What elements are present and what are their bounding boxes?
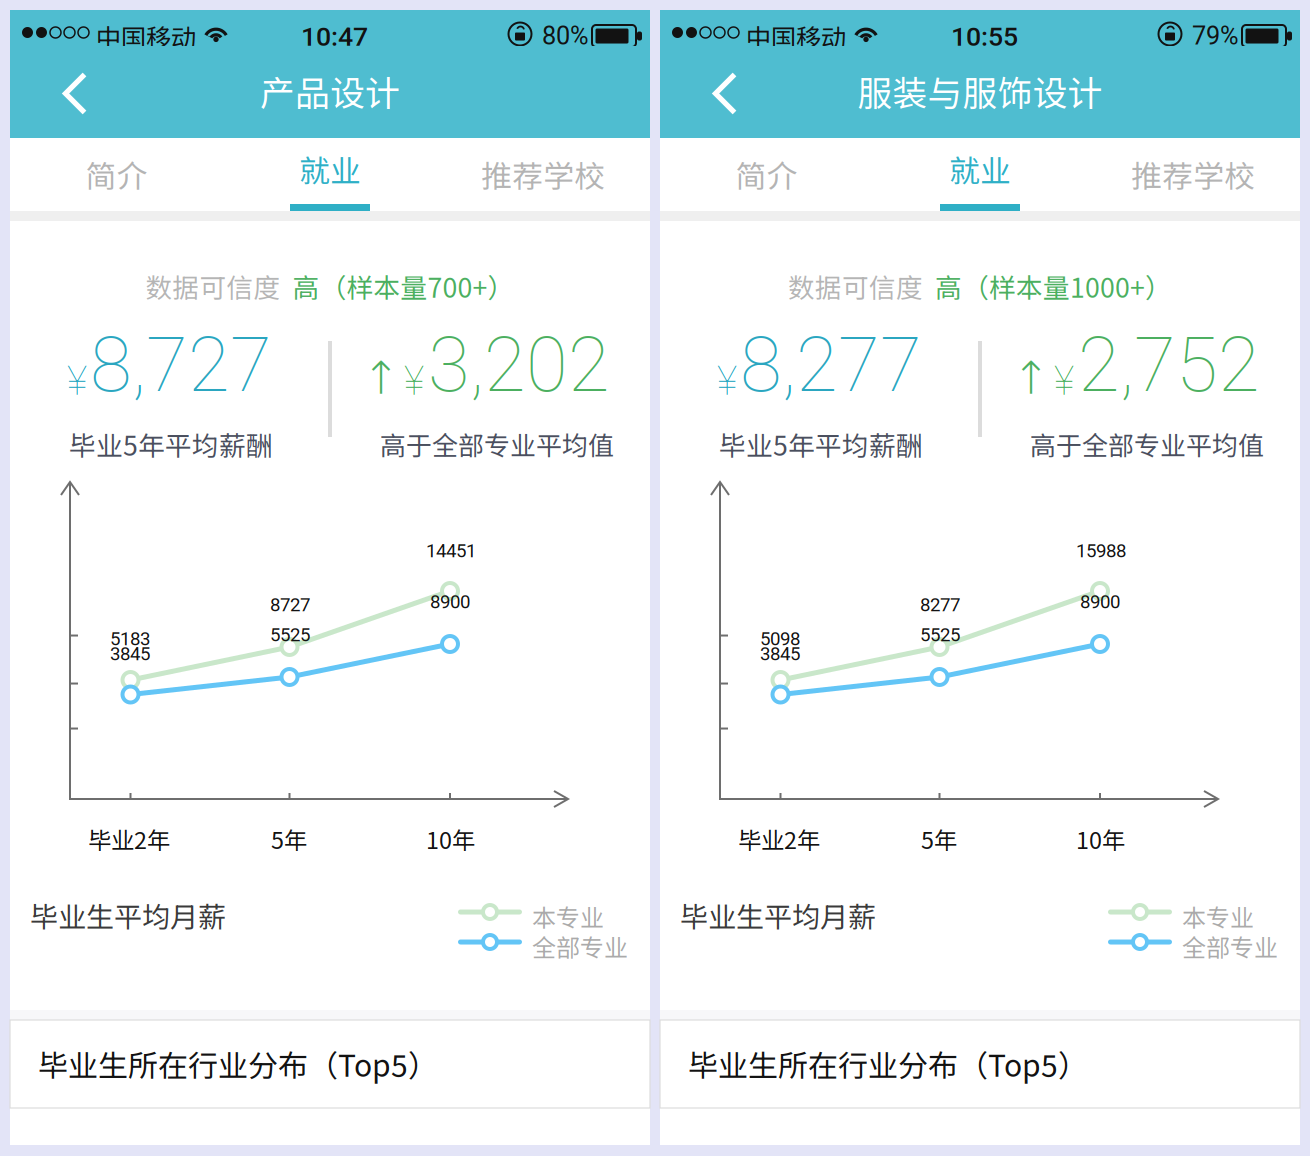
- button[interactable]: 简介: [10, 138, 223, 211]
- staticText: 10年: [1076, 822, 1125, 856]
- button[interactable]: 推荐学校: [437, 138, 650, 211]
- staticText: 3,202: [428, 320, 610, 410]
- staticText: 5年: [271, 822, 307, 856]
- staticText: ↑: [362, 352, 400, 405]
- staticText: 5183: [110, 628, 150, 650]
- staticText: 毕业生平均月薪: [680, 895, 876, 935]
- staticText: 10:47: [301, 21, 368, 52]
- staticText: 5525: [920, 624, 960, 646]
- staticText: 3845: [110, 643, 150, 665]
- staticText: 5098: [760, 628, 800, 650]
- staticText: 高于全部专业平均值: [1030, 425, 1264, 463]
- staticText: 数据可信度: [788, 267, 923, 305]
- staticText: 毕业生平均月薪: [30, 895, 226, 935]
- staticText: 5年: [921, 822, 957, 856]
- staticText: 毕业2年: [738, 822, 820, 856]
- staticText: 15988: [1076, 540, 1126, 562]
- staticText: 产品设计: [260, 66, 400, 116]
- staticText: 毕业2年: [88, 822, 170, 856]
- button[interactable]: 就业: [873, 138, 1087, 211]
- staticText: 毕业生所在行业分布（Top5）: [688, 1042, 1088, 1085]
- staticText: 79%: [1192, 21, 1239, 51]
- staticText: 8,727: [90, 320, 272, 410]
- staticText: 本专业: [1182, 899, 1254, 934]
- button[interactable]: 返回: [660, 46, 770, 138]
- button[interactable]: 就业: [223, 138, 437, 211]
- staticText: 全部专业: [532, 929, 628, 964]
- staticText: 简介: [86, 152, 148, 197]
- staticText: 14451: [426, 540, 476, 562]
- button[interactable]: 返回: [10, 46, 120, 138]
- staticText: 就业: [949, 147, 1011, 191]
- staticText: 8277: [920, 594, 960, 616]
- staticText: 高（样本量700+）: [280, 267, 514, 305]
- staticText: 10:55: [951, 21, 1018, 52]
- staticText: 就业: [299, 147, 361, 191]
- button[interactable]: 简介: [660, 138, 873, 211]
- staticText: 全部专业: [1182, 929, 1278, 964]
- staticText: 8,277: [740, 320, 922, 410]
- staticText: ¥: [67, 358, 87, 405]
- button[interactable]: 毕业生所在行业分布（Top5）: [660, 1020, 1300, 1108]
- staticText: 中国移动: [96, 18, 196, 55]
- staticText: 80%: [542, 21, 589, 51]
- staticText: 简介: [736, 152, 798, 197]
- staticText: ¥: [404, 358, 424, 405]
- staticText: 8900: [430, 591, 470, 613]
- button[interactable]: 毕业生所在行业分布（Top5）: [10, 1020, 650, 1108]
- staticText: ↑: [1012, 352, 1050, 405]
- staticText: 高于全部专业平均值: [380, 425, 614, 463]
- staticText: ¥: [1054, 358, 1074, 405]
- staticText: 8727: [270, 594, 310, 616]
- staticText: 毕业5年平均薪酬: [69, 425, 273, 463]
- staticText: 推荐学校: [481, 152, 605, 197]
- staticText: 5525: [270, 624, 310, 646]
- staticText: 毕业生所在行业分布（Top5）: [38, 1042, 438, 1085]
- staticText: 10年: [426, 822, 475, 856]
- staticText: 毕业5年平均薪酬: [719, 425, 923, 463]
- staticText: 服装与服饰设计: [857, 66, 1102, 116]
- staticText: 推荐学校: [1131, 152, 1255, 197]
- staticText: 8900: [1080, 591, 1120, 613]
- staticText: 本专业: [532, 899, 604, 934]
- staticText: 3845: [760, 643, 800, 665]
- staticText: 2,752: [1078, 320, 1260, 410]
- staticText: ¥: [717, 358, 737, 405]
- button[interactable]: 推荐学校: [1087, 138, 1300, 211]
- staticText: 中国移动: [746, 18, 846, 55]
- staticText: 数据可信度: [145, 267, 280, 305]
- staticText: 高（样本量1000+）: [923, 267, 1172, 305]
